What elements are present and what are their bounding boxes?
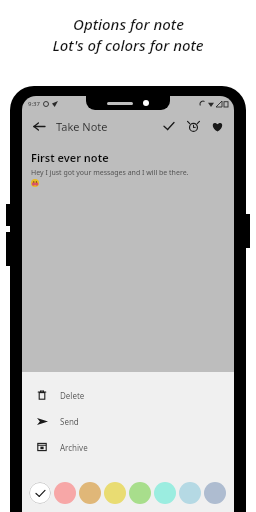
- staticText: Hey I just got your messages and I will …: [31, 168, 189, 178]
- staticText: First ever note: [31, 150, 109, 165]
- staticText: Options for note: [73, 14, 184, 34]
- button[interactable]: Note colour: [79, 482, 101, 504]
- staticText: Lot's of colors for note: [52, 35, 204, 55]
- button[interactable]: Back: [30, 117, 48, 135]
- staticText: Send: [60, 416, 79, 427]
- button[interactable]: Default colour: [29, 482, 51, 504]
- staticText: Take Note: [56, 119, 108, 134]
- staticText: Delete: [60, 390, 85, 401]
- button[interactable]: Save: [160, 117, 178, 135]
- button[interactable]: Send: [22, 408, 234, 434]
- button[interactable]: Favorite: [208, 117, 226, 135]
- button[interactable]: Reminder: [184, 117, 202, 135]
- button[interactable]: Note colour: [104, 482, 126, 504]
- button[interactable]: Note colour: [154, 482, 176, 504]
- button[interactable]: Note colour: [129, 482, 151, 504]
- button[interactable]: Archive: [22, 434, 234, 460]
- staticText: Archive: [60, 442, 88, 453]
- button[interactable]: Note colour: [204, 482, 226, 504]
- button[interactable]: Note colour: [179, 482, 201, 504]
- button[interactable]: Delete: [22, 382, 234, 408]
- button[interactable]: Note colour: [54, 482, 76, 504]
- staticText: 9:37: [28, 100, 40, 108]
